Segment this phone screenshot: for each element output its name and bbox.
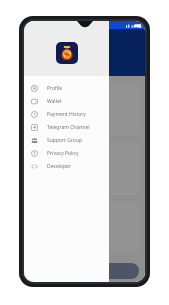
button[interactable]: Wallet	[24, 95, 109, 108]
staticText: Developer	[47, 163, 72, 170]
staticText: Support Group	[47, 137, 82, 144]
button[interactable]: Telegram Channel	[24, 121, 109, 134]
button[interactable]: Profile	[24, 82, 109, 95]
button[interactable]: Privacy Policy	[24, 147, 109, 160]
button[interactable]: Daily Bonus	[29, 82, 140, 136]
staticText: Privacy Policy	[47, 150, 79, 157]
button[interactable]: Developer	[24, 160, 109, 173]
button[interactable]: Payment History	[24, 108, 109, 121]
button[interactable]: Support	[29, 201, 140, 254]
staticText: 8:06 AM | 0.9KB/s	[27, 23, 61, 28]
staticText: Telegram Channel	[47, 124, 90, 131]
staticText: Payment History	[47, 111, 86, 118]
staticText: Profile	[47, 85, 63, 92]
button[interactable]: Withdraw	[30, 263, 139, 279]
button[interactable]: Support Group	[24, 134, 109, 147]
staticText: Wallet	[47, 98, 62, 105]
staticText: Daily Bonus	[71, 116, 99, 123]
button[interactable]: History	[29, 142, 140, 195]
